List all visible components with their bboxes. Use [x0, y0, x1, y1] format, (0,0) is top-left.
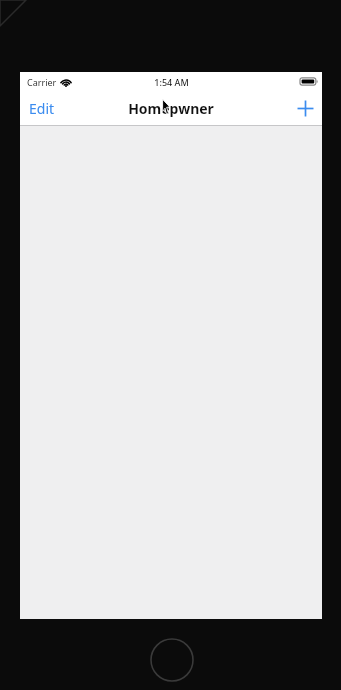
- other: Home: [150, 638, 194, 682]
- button[interactable]: Add item: [289, 95, 322, 122]
- staticText: Edit: [29, 99, 55, 118]
- staticText: Homepwner: [128, 99, 214, 118]
- staticText: Carrier: [27, 76, 57, 88]
- button[interactable]: Edit: [20, 93, 64, 124]
- staticText: 1:54 AM: [154, 76, 189, 88]
